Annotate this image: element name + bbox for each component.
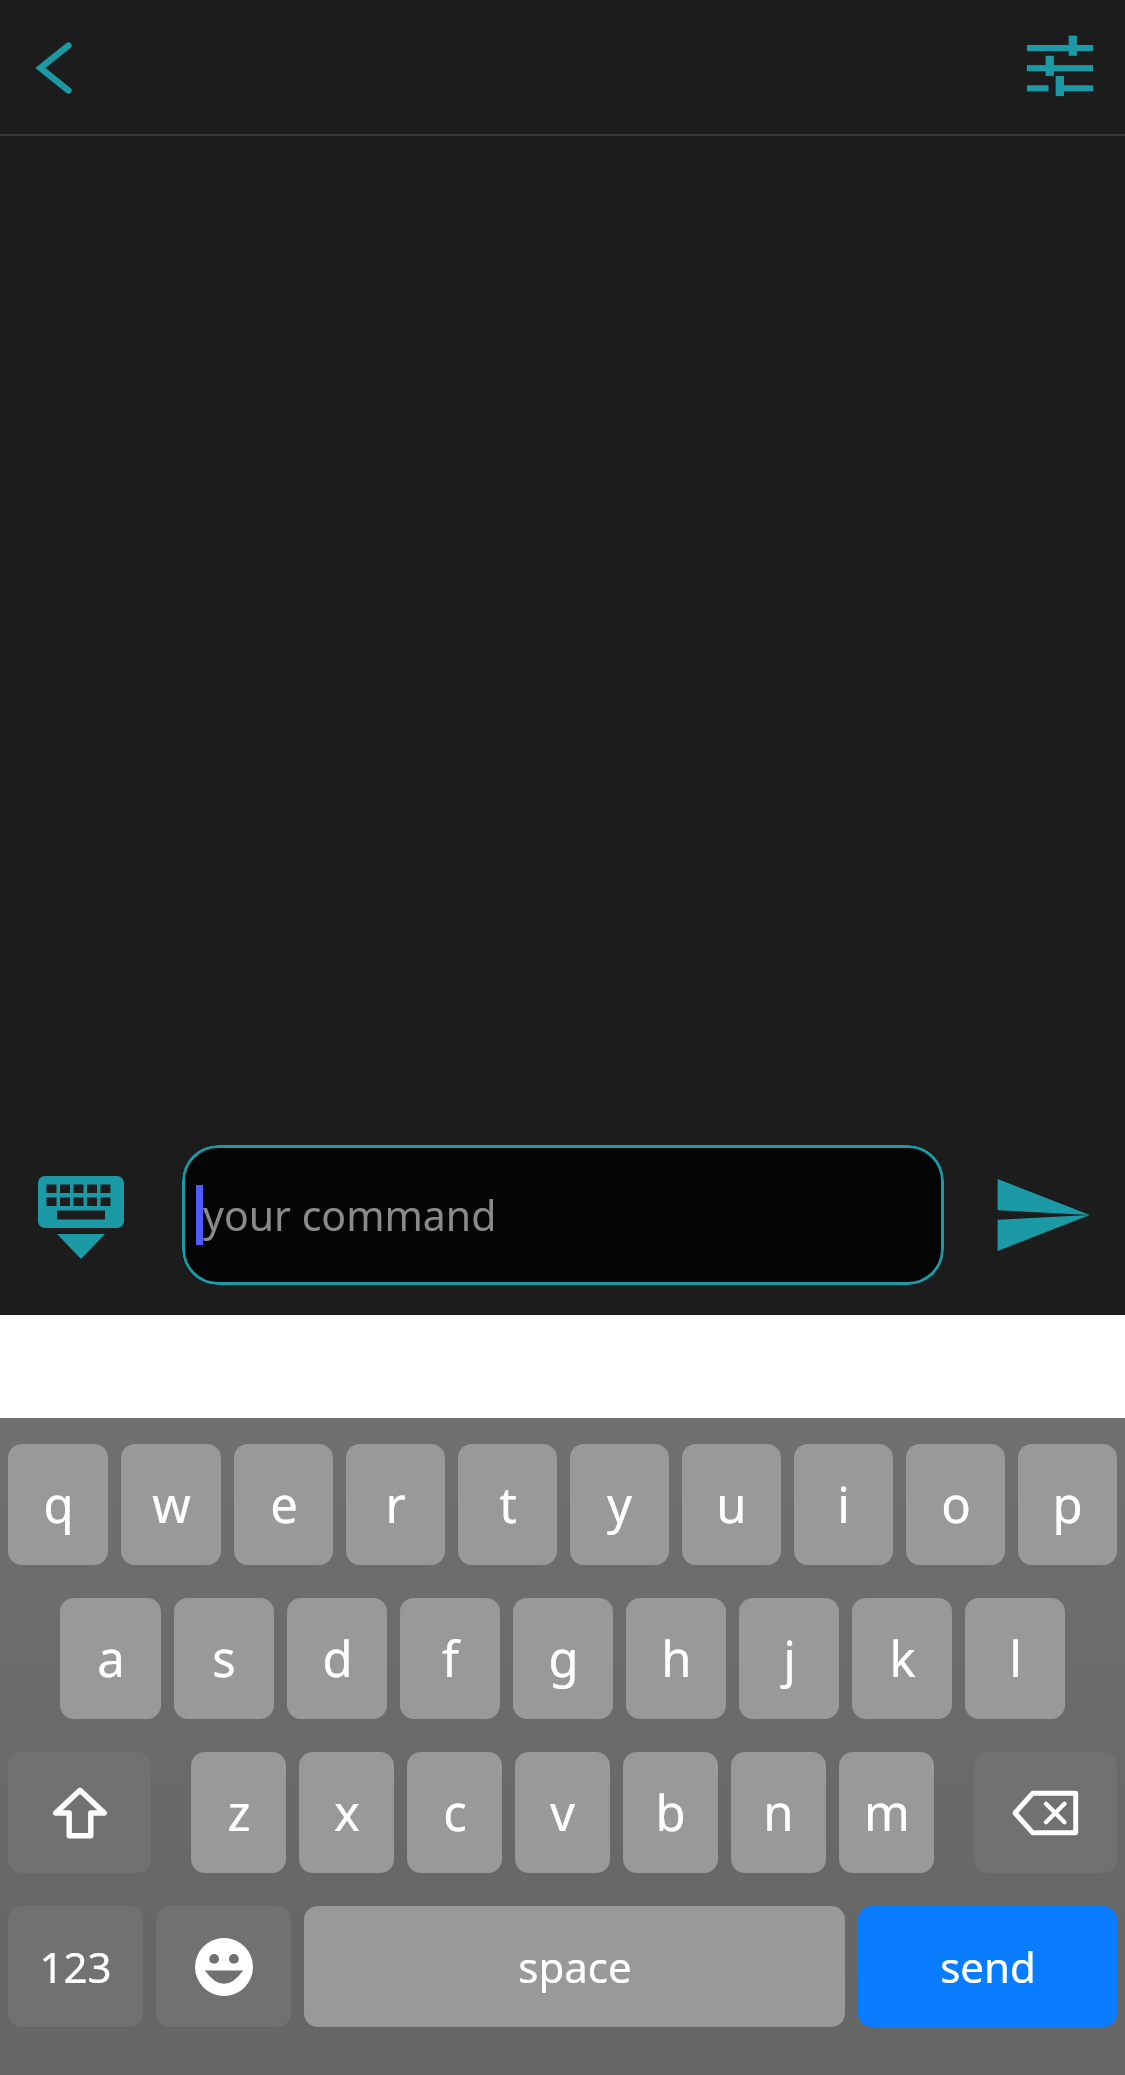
button[interactable]: 123 <box>8 1906 143 2027</box>
staticText: n <box>763 1779 794 1846</box>
button[interactable]: r <box>346 1444 445 1565</box>
button[interactable]: q <box>8 1444 108 1565</box>
staticText: x <box>334 1779 360 1846</box>
button[interactable]: g <box>513 1598 613 1719</box>
staticText: d <box>322 1625 353 1692</box>
staticText: y <box>607 1471 632 1538</box>
staticText: f <box>442 1625 459 1692</box>
button[interactable]: n <box>731 1752 826 1873</box>
staticText: t <box>499 1471 517 1538</box>
button[interactable]: z <box>191 1752 286 1873</box>
button[interactable]: x <box>299 1752 394 1873</box>
button[interactable]: y <box>570 1444 669 1565</box>
staticText: v <box>550 1779 575 1846</box>
staticText: w <box>152 1471 191 1538</box>
staticText: space <box>518 1938 632 1995</box>
staticText: your command <box>203 1187 497 1243</box>
staticText: c <box>443 1779 467 1846</box>
button[interactable]: v <box>515 1752 610 1873</box>
button[interactable]: Hide keyboard <box>16 1151 146 1281</box>
button[interactable]: Backspace <box>974 1752 1117 1873</box>
button[interactable]: l <box>965 1598 1065 1719</box>
staticText: s <box>212 1625 236 1692</box>
staticText: h <box>661 1625 692 1692</box>
button[interactable]: space <box>304 1906 845 2027</box>
button[interactable]: f <box>400 1598 500 1719</box>
staticText: i <box>837 1471 850 1538</box>
button[interactable]: b <box>623 1752 718 1873</box>
button[interactable]: Send <box>965 1140 1115 1290</box>
button[interactable]: e <box>234 1444 333 1565</box>
staticText: g <box>548 1625 579 1692</box>
button[interactable]: c <box>407 1752 502 1873</box>
staticText: r <box>385 1471 406 1538</box>
staticText: o <box>941 1471 971 1538</box>
staticText: k <box>889 1625 916 1692</box>
button[interactable]: Settings <box>995 0 1125 136</box>
button[interactable]: h <box>626 1598 726 1719</box>
button[interactable]: a <box>60 1598 161 1719</box>
staticText: j <box>783 1625 796 1692</box>
button[interactable]: s <box>174 1598 274 1719</box>
button[interactable]: o <box>906 1444 1005 1565</box>
button[interactable]: Back <box>0 0 110 136</box>
button[interactable]: p <box>1018 1444 1117 1565</box>
staticText: e <box>270 1471 298 1538</box>
button[interactable]: Shift <box>8 1752 151 1873</box>
button[interactable]: m <box>839 1752 934 1873</box>
button[interactable]: t <box>458 1444 557 1565</box>
button[interactable]: w <box>121 1444 221 1565</box>
button[interactable]: i <box>794 1444 893 1565</box>
staticText: z <box>227 1779 251 1846</box>
button[interactable]: u <box>682 1444 781 1565</box>
staticText: u <box>716 1471 747 1538</box>
staticText: b <box>655 1779 686 1846</box>
button[interactable]: your command <box>182 1145 944 1285</box>
staticText: a <box>97 1625 125 1692</box>
staticText: m <box>864 1779 910 1846</box>
staticText: send <box>940 1938 1036 1995</box>
staticText: l <box>1009 1625 1022 1692</box>
staticText: q <box>43 1471 74 1538</box>
staticText: p <box>1052 1471 1083 1538</box>
staticText: 123 <box>39 1938 112 1995</box>
button[interactable]: send <box>858 1906 1117 2027</box>
button[interactable]: Emoji <box>156 1906 291 2027</box>
button[interactable]: k <box>852 1598 952 1719</box>
button[interactable]: d <box>287 1598 387 1719</box>
button[interactable]: j <box>739 1598 839 1719</box>
